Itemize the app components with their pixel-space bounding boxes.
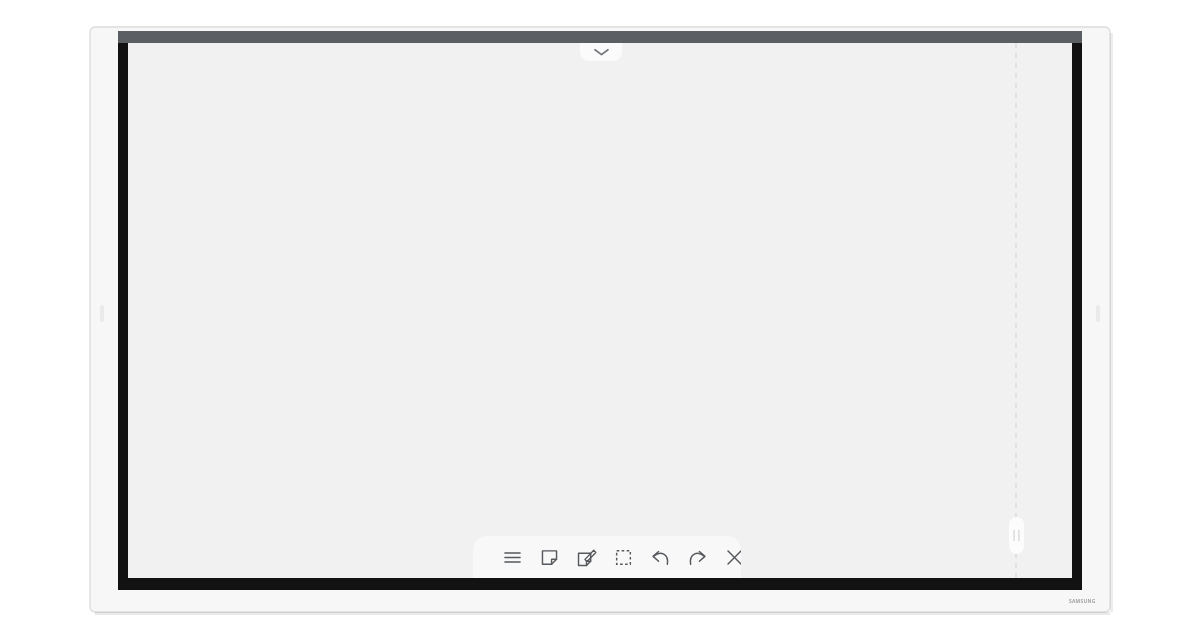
button[interactable]: Redo xyxy=(682,542,712,572)
button[interactable]: Show toolbar xyxy=(580,43,622,61)
button[interactable]: Resize divider xyxy=(1009,517,1024,554)
button[interactable]: Select xyxy=(608,542,638,572)
button[interactable]: Undo xyxy=(645,542,675,572)
button[interactable]: Menu xyxy=(497,542,527,572)
button[interactable]: Close xyxy=(719,542,741,572)
staticText: SAMSUNG xyxy=(1069,598,1096,605)
button[interactable]: Edit note xyxy=(571,542,601,572)
button[interactable]: New note xyxy=(534,542,564,572)
